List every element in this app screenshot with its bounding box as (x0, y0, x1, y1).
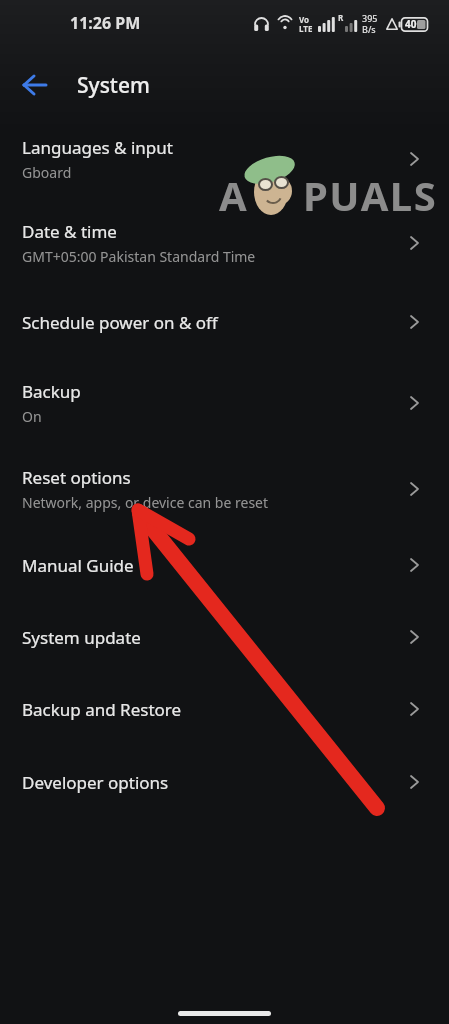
staticText: Vo (299, 14, 310, 25)
staticText: Date & time (22, 220, 117, 243)
staticText: Network, apps, or device can be reset (22, 493, 269, 512)
staticText: On (22, 407, 42, 426)
staticText: PUALS (303, 168, 438, 222)
staticText: Backup (22, 380, 81, 403)
staticText: 11:26 PM (70, 12, 141, 34)
staticText: Developer options (22, 771, 169, 794)
staticText: GMT+05:00 Pakistan Standard Time (22, 247, 256, 266)
staticText: Languages & input (22, 136, 173, 159)
staticText: 40 (405, 17, 417, 31)
staticText: Manual Guide (22, 554, 134, 577)
staticText: Schedule power on & off (22, 311, 218, 334)
staticText: Gboard (22, 163, 72, 182)
staticText: A (219, 168, 247, 222)
staticText: LTE (299, 23, 313, 34)
staticText: System (77, 71, 150, 100)
staticText: 395 (362, 12, 378, 24)
staticText: System update (22, 626, 141, 649)
staticText: Backup and Restore (22, 698, 182, 721)
staticText: R (338, 12, 344, 23)
staticText: Reset options (22, 466, 131, 489)
staticText: B/s (362, 23, 376, 35)
